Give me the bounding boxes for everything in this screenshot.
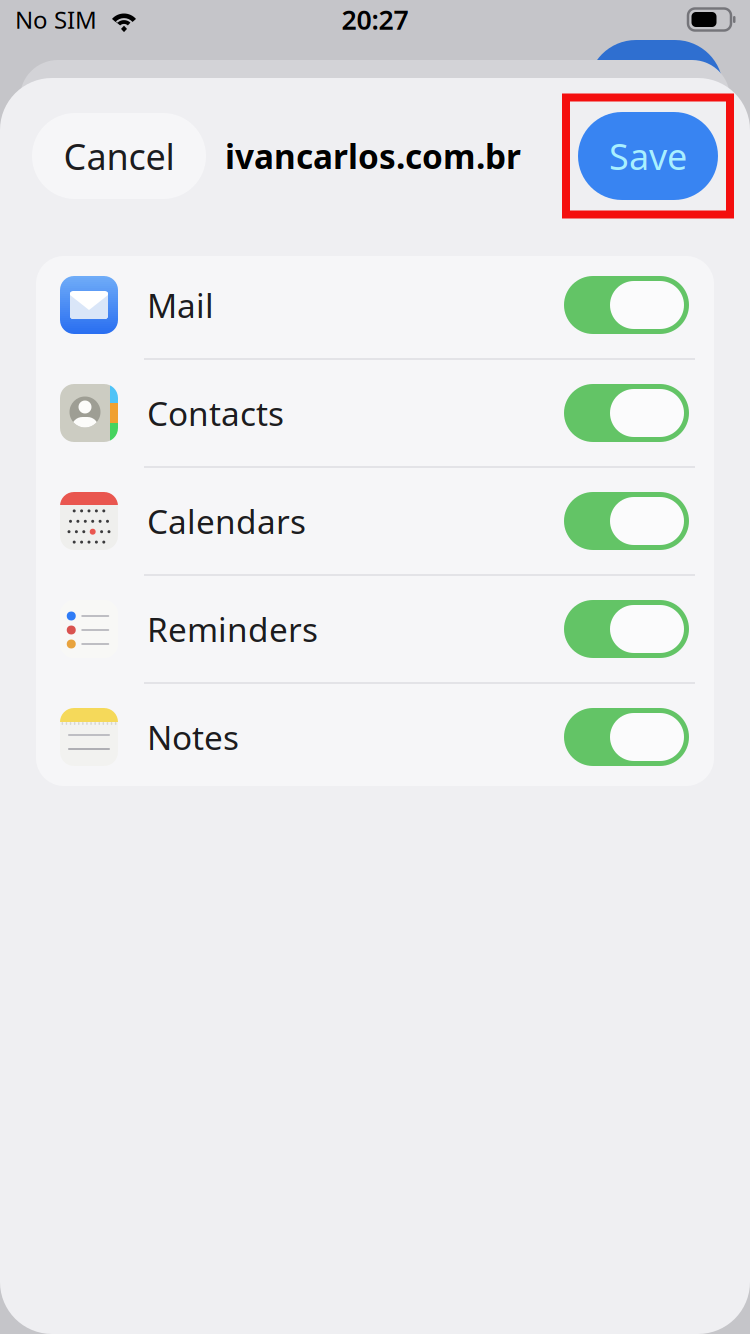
staticText: Calendars [147,499,306,543]
button[interactable]: Reminders [36,576,714,682]
staticText: Mail [147,283,214,327]
staticText: Cancel [63,132,174,180]
staticText: Contacts [147,391,284,435]
button[interactable]: Cancel [32,113,206,199]
staticText: Notes [147,715,239,759]
button[interactable]: Notes [36,684,714,790]
staticText: 20:27 [341,2,408,37]
staticText: Save [609,132,687,180]
button[interactable]: Mail [36,252,714,358]
button[interactable]: Contacts [36,360,714,466]
staticText: Reminders [147,607,318,651]
button[interactable]: Calendars [36,468,714,574]
staticText: ivancarlos.com.br [225,134,521,178]
button[interactable]: Save [566,97,730,214]
staticText: No SIM [15,4,97,35]
